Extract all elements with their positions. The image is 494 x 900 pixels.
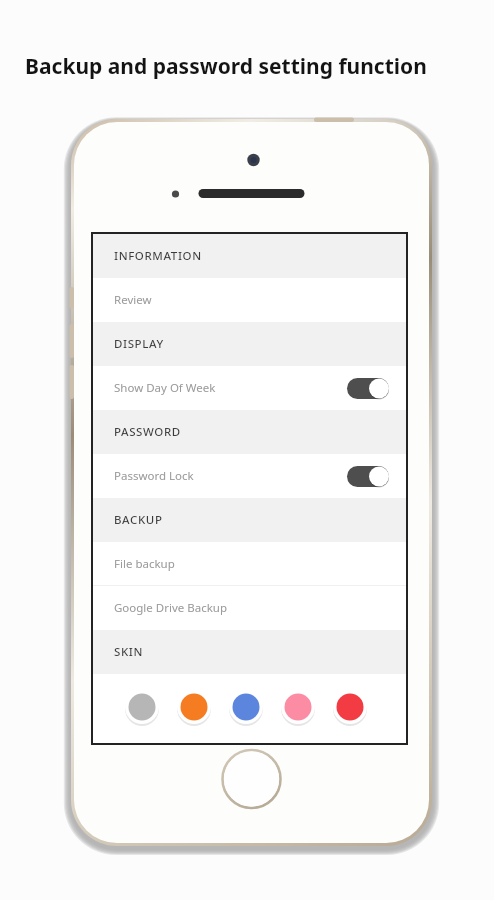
staticText: Show Day Of Week (114, 380, 347, 396)
staticText: PASSWORD (114, 424, 181, 440)
button[interactable]: Toggle setting (347, 466, 389, 487)
staticText: File backup (114, 556, 175, 572)
button[interactable]: Google Drive Backup (93, 586, 406, 630)
button[interactable]: Skin color 5 (329, 686, 371, 728)
button[interactable]: Skin color 2 (173, 686, 215, 728)
staticText: INFORMATION (114, 248, 202, 264)
staticText: Google Drive Backup (114, 600, 227, 616)
button[interactable]: Review (93, 278, 406, 322)
staticText: Backup and password setting function (25, 52, 427, 81)
button[interactable]: Skin color 3 (225, 686, 267, 728)
button[interactable]: Toggle setting (347, 378, 389, 399)
button[interactable]: File backup (93, 542, 406, 585)
staticText: BACKUP (114, 512, 163, 528)
staticText: Review (114, 292, 152, 308)
staticText: SKIN (114, 644, 143, 660)
staticText: DISPLAY (114, 336, 164, 352)
button[interactable]: Skin color 4 (277, 686, 319, 728)
button[interactable]: Password Lock (93, 454, 406, 498)
staticText: Password Lock (114, 468, 347, 484)
button[interactable]: Skin color 1 (121, 686, 163, 728)
button[interactable]: Show Day Of Week (93, 366, 406, 410)
